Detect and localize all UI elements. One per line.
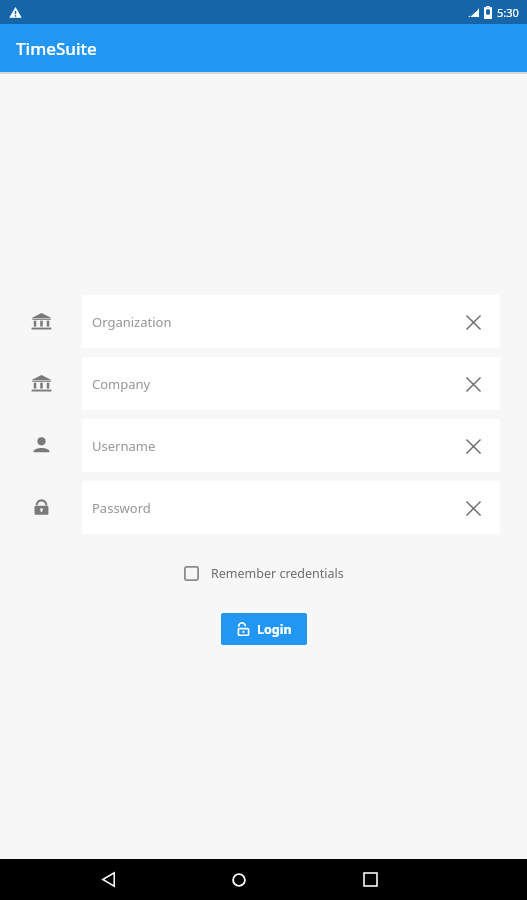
staticText: TimeSuite — [16, 37, 97, 60]
staticText: Password — [92, 499, 456, 517]
staticText: Organization — [92, 313, 456, 331]
button[interactable]: Clear Username — [456, 429, 490, 463]
button[interactable]: Recent apps — [346, 859, 394, 900]
staticText: Login — [257, 621, 292, 638]
button[interactable]: Back — [84, 859, 132, 900]
button[interactable]: Login — [221, 613, 307, 645]
button[interactable]: Company — [82, 357, 500, 410]
button[interactable]: Password — [82, 481, 500, 534]
button[interactable]: Username — [82, 419, 500, 472]
button[interactable]: Clear Company — [456, 367, 490, 401]
staticText: Company — [92, 375, 456, 393]
button[interactable]: Organization — [82, 295, 500, 348]
staticText: 5:30 — [497, 5, 519, 20]
button[interactable]: Home — [215, 859, 263, 900]
button[interactable]: Remember credentials — [182, 561, 346, 586]
staticText: Remember credentials — [211, 565, 344, 582]
button[interactable]: Clear Organization — [456, 305, 490, 339]
button[interactable]: Clear Password — [456, 491, 490, 525]
staticText: Username — [92, 437, 456, 455]
